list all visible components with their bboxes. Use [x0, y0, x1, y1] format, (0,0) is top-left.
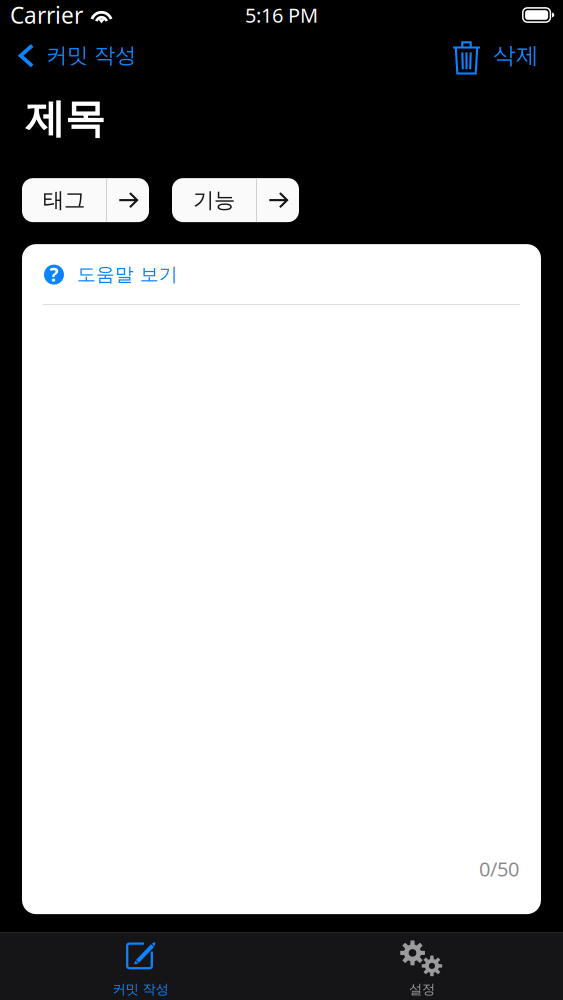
- button[interactable]: 커밋 작성: [0, 932, 281, 1000]
- staticText: 0/50: [479, 856, 519, 882]
- staticText: 기능: [193, 187, 235, 213]
- staticText: 커밋 작성: [46, 42, 136, 69]
- staticText: 삭제: [493, 42, 539, 69]
- button[interactable]: 기능: [172, 178, 299, 222]
- staticText: Carrier: [10, 0, 83, 30]
- staticText: 도움말 보기: [77, 263, 178, 286]
- staticText: 태그: [43, 187, 85, 213]
- button[interactable]: 태그: [22, 178, 149, 222]
- staticText: 5:16 PM: [245, 2, 318, 28]
- button[interactable]: 삭제: [442, 30, 563, 78]
- staticText: 제목: [25, 94, 105, 143]
- button[interactable]: ?: [22, 244, 541, 304]
- staticText: 설정: [409, 981, 435, 998]
- button[interactable]: 설정: [281, 932, 563, 1000]
- staticText: ?: [49, 262, 58, 287]
- staticText: 커밋 작성: [112, 981, 168, 998]
- button[interactable]: 커밋 작성: [0, 30, 146, 78]
